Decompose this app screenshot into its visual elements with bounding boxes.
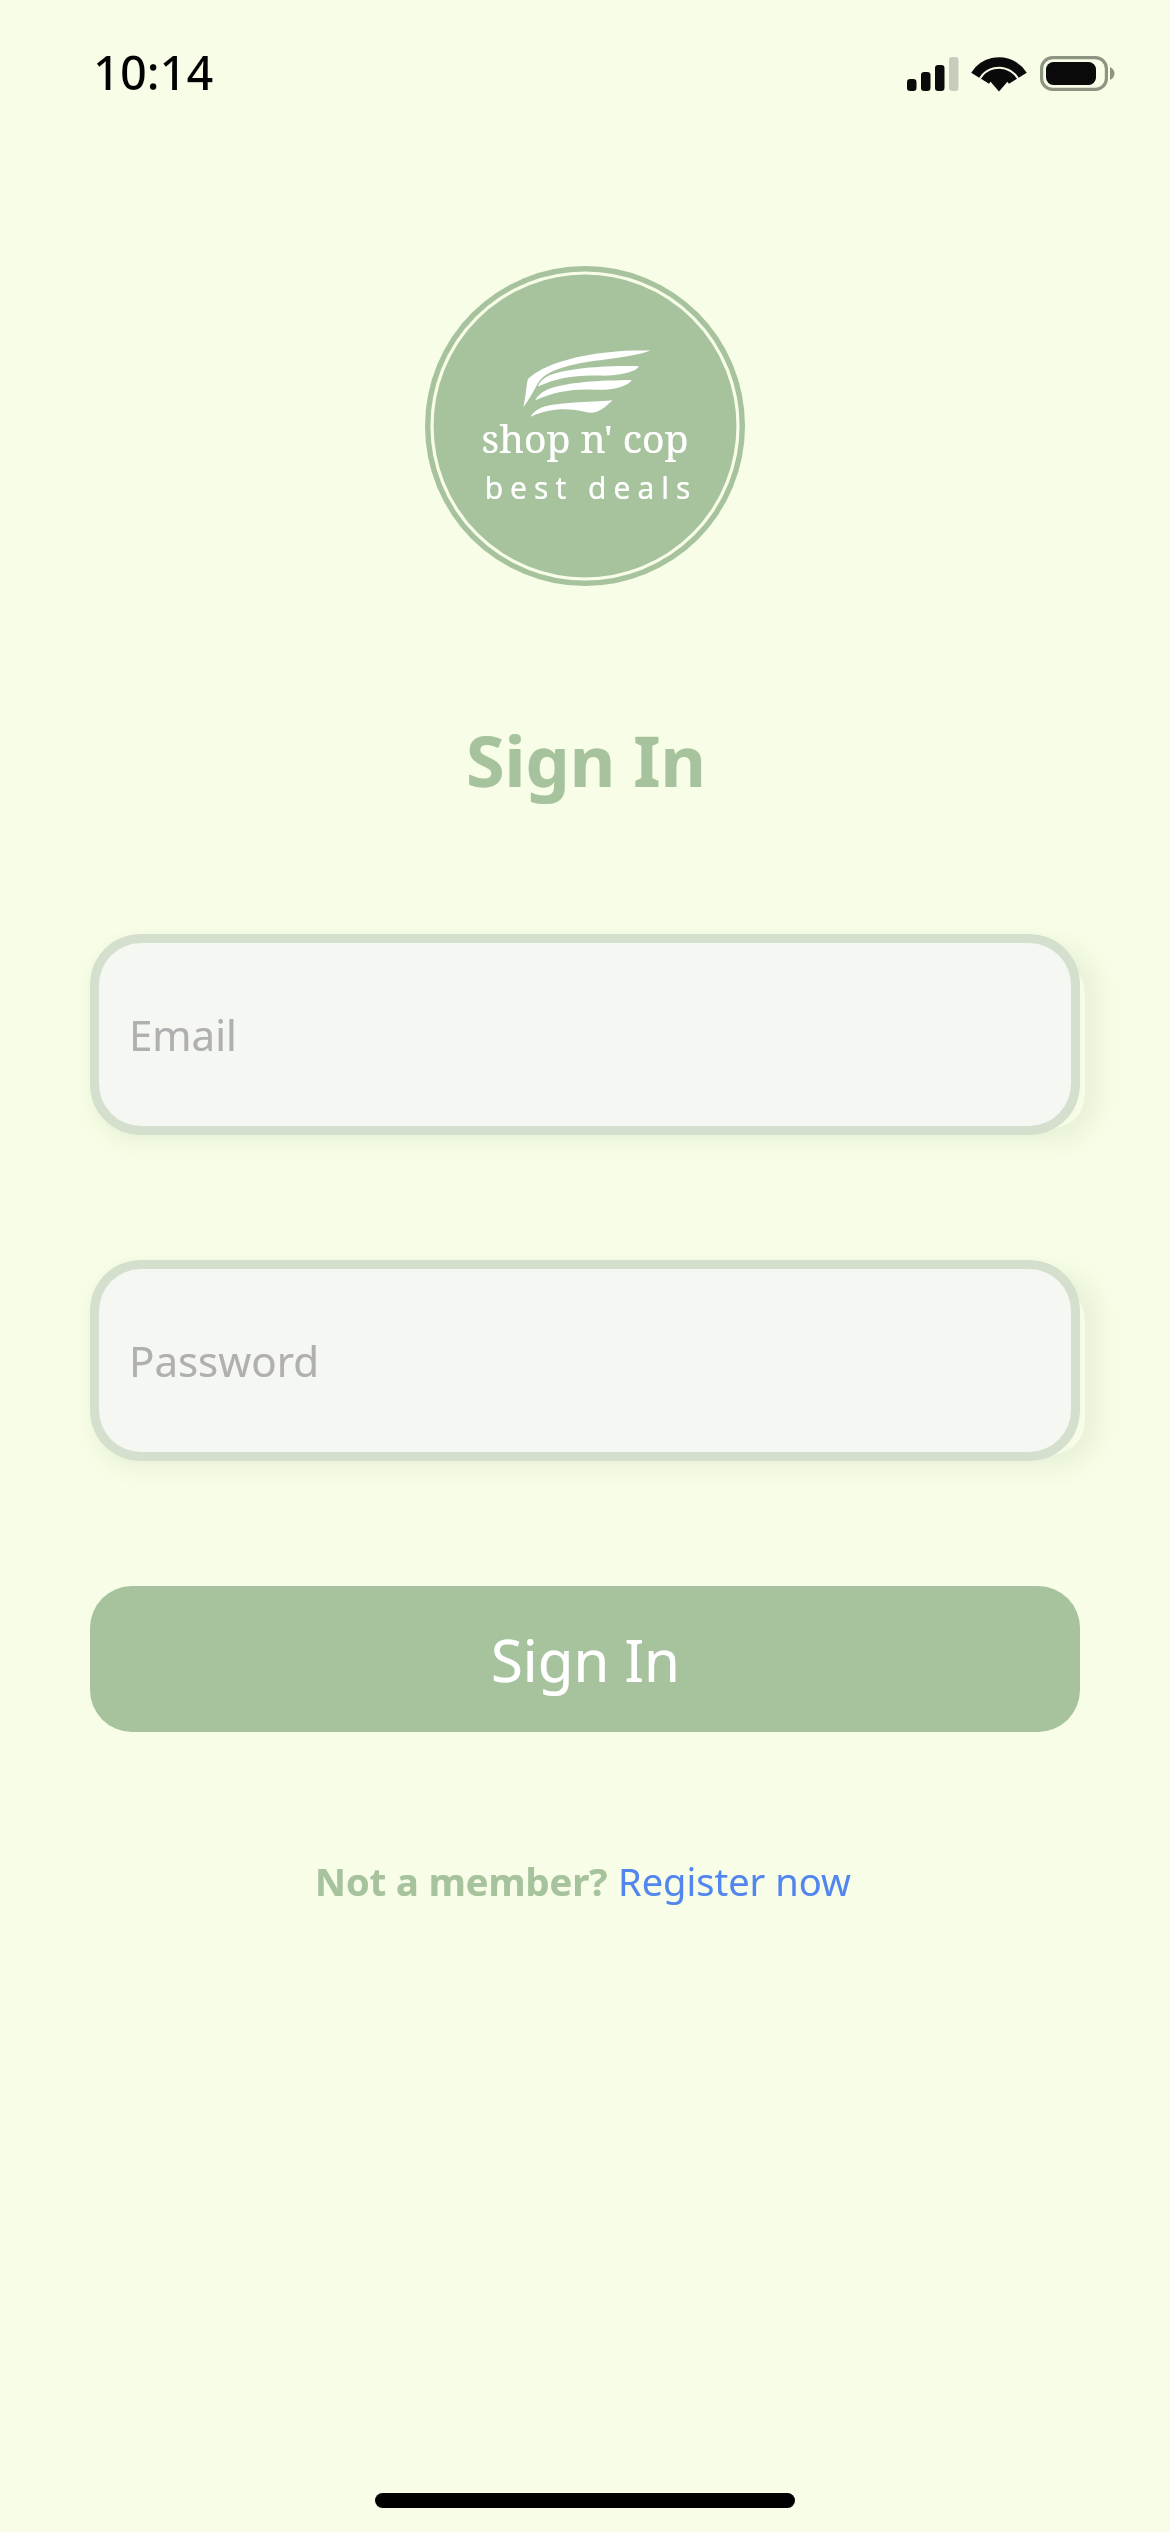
other: Cellular signal, Wi-Fi and battery statu…: [905, 53, 1120, 95]
staticText: Email: [129, 1006, 237, 1063]
staticText: Sign In: [491, 1620, 680, 1699]
staticText: Not a member?: [315, 1855, 618, 1907]
staticText: Register now: [618, 1855, 851, 1907]
staticText: Sign In: [1, 712, 1170, 807]
button[interactable]: Sign In: [90, 1586, 1080, 1732]
staticText: shop n' cop: [425, 411, 745, 464]
button[interactable]: Email: [90, 934, 1080, 1135]
staticText: 10:14: [93, 40, 214, 104]
staticText: best deals: [431, 467, 751, 508]
button[interactable]: Not a member?: [315, 1855, 851, 1907]
staticText: Password: [129, 1332, 319, 1389]
button[interactable]: Password: [90, 1260, 1080, 1461]
